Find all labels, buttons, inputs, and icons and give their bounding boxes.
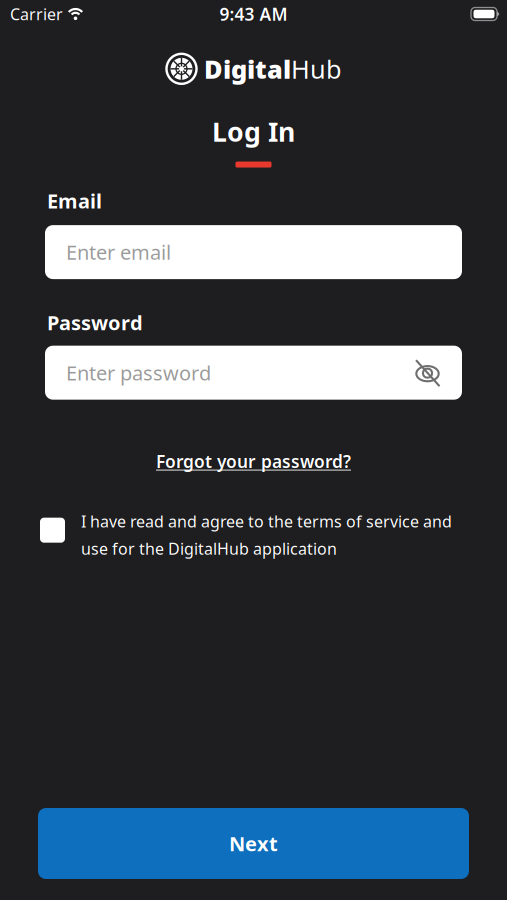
staticText: Password: [47, 309, 143, 336]
staticText: use for the DigitalHub application: [81, 538, 337, 559]
button[interactable]: Forgot your password?: [156, 450, 351, 473]
button[interactable]: Enter email: [45, 225, 462, 279]
staticText: Enter email: [66, 239, 171, 265]
staticText: 9:43 AM: [219, 2, 287, 25]
staticText: Email: [47, 188, 102, 214]
staticText: Digital: [204, 52, 291, 86]
button[interactable]: Enter password: [45, 346, 462, 400]
button[interactable]: Show password: [413, 358, 442, 388]
staticText: Log In: [212, 114, 295, 149]
staticText: Next: [229, 830, 278, 857]
button[interactable]: I have read and agree to the terms of se…: [40, 511, 452, 559]
button[interactable]: Next: [38, 808, 469, 879]
staticText: Enter password: [66, 359, 211, 386]
staticText: Forgot your password?: [156, 450, 351, 473]
staticText: I have read and agree to the terms of se…: [81, 511, 452, 532]
staticText: Carrier: [10, 3, 63, 25]
staticText: Hub: [291, 52, 342, 86]
